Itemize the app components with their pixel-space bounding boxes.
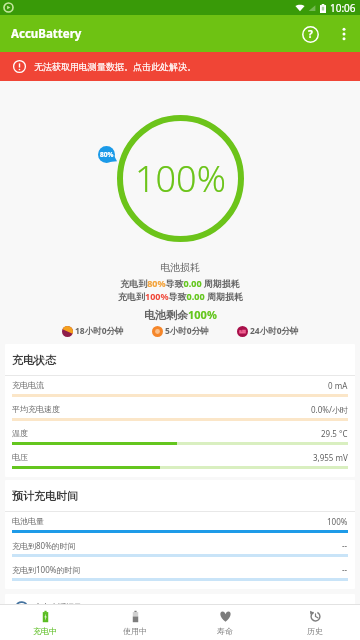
- staticText: 电池剩余100%: [144, 307, 217, 322]
- button[interactable]: 充电到80%的时间: [5, 536, 355, 560]
- staticText: 100%: [327, 516, 348, 527]
- button[interactable]: 平均充电速度: [5, 400, 355, 424]
- staticText: 0 mA: [328, 380, 348, 391]
- staticText: 使用中: [123, 626, 147, 636]
- staticText: 5小时0分钟: [165, 325, 209, 337]
- staticText: --: [342, 540, 348, 551]
- button[interactable]: 电压: [5, 448, 355, 472]
- staticText: 充电到80%的时间: [12, 540, 76, 551]
- staticText: 平均充电速度: [12, 404, 60, 414]
- staticText: 充电中: [33, 626, 57, 636]
- staticText: 充电电流: [12, 380, 44, 390]
- button[interactable]: More options: [328, 18, 360, 50]
- staticText: 10:06: [330, 1, 356, 15]
- staticText: 电池损耗: [160, 261, 200, 274]
- button[interactable]: 充电电流: [5, 376, 355, 400]
- button[interactable]: 无法获取用电测量数据。点击此处解决。: [0, 52, 360, 81]
- button[interactable]: Help: [292, 16, 328, 52]
- staticText: --: [342, 564, 348, 575]
- staticText: 充电会话记录: [34, 602, 82, 612]
- staticText: 3,955 mV: [313, 452, 348, 463]
- staticText: ?: [308, 27, 313, 41]
- staticText: 充电状态: [12, 353, 56, 367]
- button[interactable]: 历史: [270, 605, 360, 640]
- button[interactable]: 充电中: [0, 605, 90, 640]
- staticText: 预计充电时间: [12, 489, 78, 503]
- staticText: 29.5 °C: [321, 428, 348, 439]
- staticText: 充电到100%导致0.00 周期损耗: [118, 290, 243, 302]
- button[interactable]: 温度: [5, 424, 355, 448]
- staticText: 24小时0分钟: [250, 325, 299, 337]
- staticText: 寿命: [217, 626, 233, 636]
- button[interactable]: 寿命: [180, 605, 270, 640]
- staticText: 无法获取用电测量数据。点击此处解决。: [34, 61, 196, 72]
- button[interactable]: 充电到100%的时间: [5, 560, 355, 584]
- staticText: 电池电量: [12, 516, 44, 526]
- staticText: 充电到80%导致0.00 周期损耗: [120, 277, 240, 289]
- staticText: 历史: [307, 626, 323, 636]
- staticText: 0.0%/小时: [311, 404, 348, 415]
- staticText: 充电到100%的时间: [12, 564, 81, 575]
- button[interactable]: 电池电量: [5, 512, 355, 536]
- staticText: 80%: [100, 150, 114, 159]
- staticText: 100%: [135, 154, 226, 203]
- staticText: 18小时0分钟: [75, 325, 124, 337]
- staticText: 温度: [12, 428, 28, 438]
- button[interactable]: 使用中: [90, 605, 180, 640]
- staticText: AccuBattery: [11, 26, 82, 42]
- staticText: 电压: [12, 452, 28, 462]
